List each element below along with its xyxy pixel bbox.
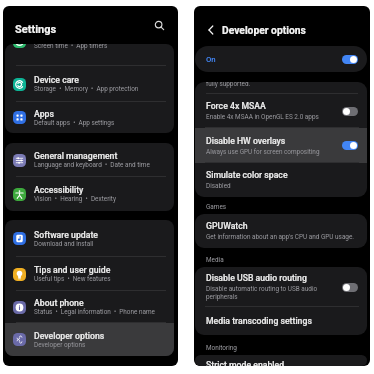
button[interactable]: Back [204,23,217,36]
staticText: About phone [34,298,84,308]
staticText: Enable 4x MSAA in OpenGL ES 2.0 apps [206,113,319,121]
staticText: General management [34,151,118,161]
button[interactable]: Accessibility [5,177,174,211]
staticText: Media transcoding settings [206,316,312,326]
staticText: Simulate color space [206,170,288,180]
staticText: Games [206,203,227,211]
staticText: Developer options [34,341,86,349]
button[interactable]: Simulate color space [195,163,367,197]
staticText: Strict mode enabled [206,360,285,366]
staticText: Accessibility [34,185,84,195]
staticText: Monitoring [206,344,237,352]
staticText: Always use GPU for screen compositing [206,148,320,156]
staticText: Disable HW overlays [206,136,286,146]
button[interactable]: Off [342,107,358,116]
staticText: Storage • Memory • App protection [34,85,139,93]
button[interactable]: Software update [5,220,174,257]
button[interactable]: Force 4x MSAA [195,94,367,128]
staticText: GPUWatch [206,221,248,231]
button[interactable]: General management [5,143,174,177]
staticText: Apps [34,109,54,119]
button[interactable]: On [195,46,367,72]
staticText: Force 4x MSAA [206,101,266,111]
staticText: Language and keyboard • Date and time [34,161,150,169]
staticText: Status • Legal information • Phone name [34,308,156,316]
staticText: Disabled [206,182,231,190]
staticText: On [206,55,216,64]
staticText: Screen time • App timers [34,44,108,50]
button[interactable]: Device care [5,66,174,102]
staticText: Get information about an app's CPU and G… [206,233,355,241]
button[interactable]: About phone [5,291,174,323]
staticText: Media [206,256,224,264]
button[interactable]: Search [151,17,167,33]
staticText: Developer options [222,24,306,36]
button[interactable]: On [342,141,358,150]
staticText: Software update [34,230,98,240]
button[interactable]: GPUWatch [195,214,367,248]
staticText: Disable automatic routing to USB audio [206,285,318,293]
staticText: Developer options [34,331,105,341]
staticText: peripherals [206,293,238,301]
staticText: fully supported. [206,82,251,88]
staticText: Useful tips • New features [34,275,111,283]
button[interactable]: Strict mode enabled [195,355,367,366]
staticText: Vision • Hearing • Dexterity [34,195,116,203]
button[interactable]: Apps [5,102,174,133]
button[interactable]: On [342,55,358,64]
button[interactable]: Digital Wellbeing [5,44,174,66]
button[interactable]: Developer options [5,323,174,356]
button[interactable]: Media transcoding settings [195,307,367,335]
staticText: Disable USB audio routing [206,273,307,283]
button[interactable]: Disable HW overlays [195,128,367,163]
staticText: Download and install [34,240,94,248]
staticText: Device care [34,75,80,85]
button[interactable]: Off [342,283,358,292]
staticText: Tips and user guide [34,265,111,275]
button[interactable]: Disable USB audio routing [195,267,367,307]
button[interactable]: Tips and user guide [5,257,174,291]
staticText: Default apps • App settings [34,119,115,127]
staticText: Settings [15,23,57,36]
